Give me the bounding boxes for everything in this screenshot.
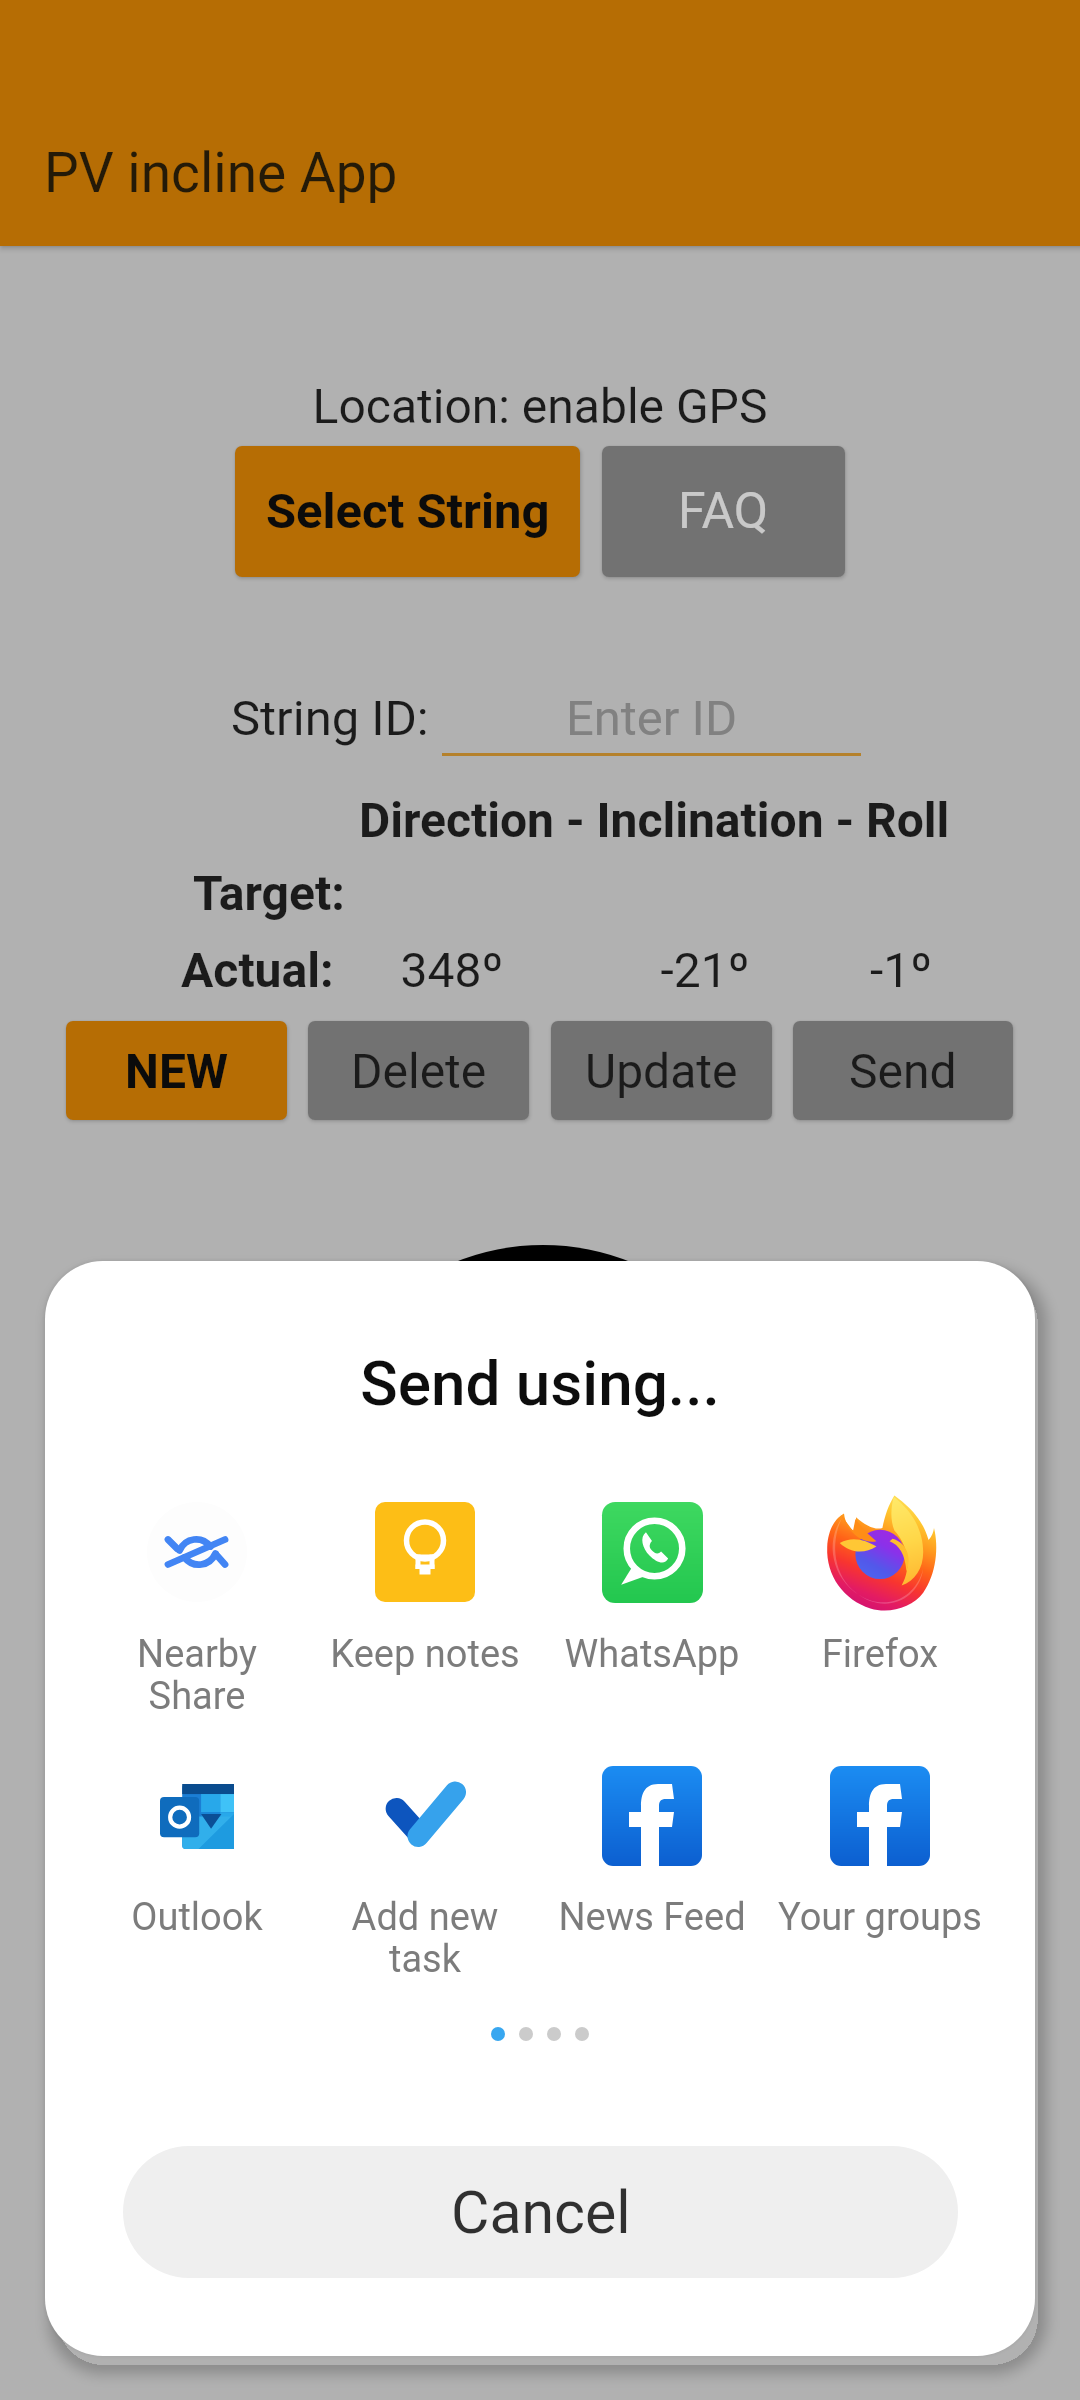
- other: Keep notes: [375, 1502, 475, 1602]
- staticText: Nearby Share: [84, 1632, 310, 1719]
- staticText: Location: enable GPS: [0, 378, 1080, 434]
- button[interactable]: WhatsApp: [539, 1490, 765, 1676]
- staticText: -21º: [630, 942, 780, 998]
- button[interactable]: Delete: [308, 1021, 529, 1120]
- button[interactable]: Select String: [235, 446, 580, 577]
- other: Nearby Share: [147, 1502, 247, 1602]
- other: Facebook: [602, 1766, 702, 1866]
- staticText: Delete: [351, 1043, 487, 1099]
- button[interactable]: PV incline App: [0, 0, 1080, 246]
- staticText: -1º: [836, 942, 966, 998]
- staticText: WhatsApp: [539, 1632, 765, 1677]
- staticText: Enter ID: [442, 690, 861, 747]
- staticText: FAQ: [678, 482, 769, 541]
- staticText: News Feed: [539, 1895, 765, 1940]
- other: Facebook: [830, 1766, 930, 1866]
- staticText: 348º: [377, 942, 527, 998]
- staticText: NEW: [125, 1043, 228, 1099]
- staticText: Send using...: [45, 1347, 1035, 1420]
- button[interactable]: Keep notes: [312, 1490, 538, 1676]
- button[interactable]: Facebook: [539, 1754, 765, 1940]
- staticText: Cancel: [451, 2178, 631, 2247]
- staticText: Direction - Inclination - Roll: [359, 792, 950, 848]
- other: Firefox: [820, 1492, 940, 1612]
- other: Add new task: [383, 1780, 467, 1852]
- button[interactable]: FAQ: [602, 446, 845, 577]
- staticText: Add new task: [312, 1895, 538, 1982]
- other: Outlook: [160, 1784, 234, 1849]
- staticText: Your groups: [767, 1895, 993, 1940]
- button[interactable]: Outlook: [84, 1754, 310, 1940]
- button[interactable]: Send: [793, 1021, 1013, 1120]
- button[interactable]: Nearby Share: [84, 1490, 310, 1676]
- staticText: String ID:: [231, 690, 429, 747]
- button[interactable]: Cancel: [123, 2146, 958, 2278]
- button[interactable]: Update: [551, 1021, 772, 1120]
- staticText: Update: [585, 1043, 738, 1099]
- button[interactable]: Add new task: [312, 1754, 538, 1940]
- other: WhatsApp: [602, 1502, 703, 1603]
- staticText: Actual:: [181, 942, 334, 998]
- button[interactable]: Facebook: [767, 1754, 993, 1940]
- button[interactable]: Firefox: [767, 1490, 993, 1676]
- staticText: PV incline App: [44, 141, 398, 205]
- staticText: Target:: [193, 865, 345, 921]
- button[interactable]: NEW: [66, 1021, 287, 1120]
- staticText: Send: [849, 1043, 957, 1099]
- staticText: Select String: [266, 483, 550, 540]
- staticText: Firefox: [767, 1632, 993, 1677]
- staticText: Outlook: [84, 1895, 310, 1940]
- staticText: Keep notes: [312, 1632, 538, 1677]
